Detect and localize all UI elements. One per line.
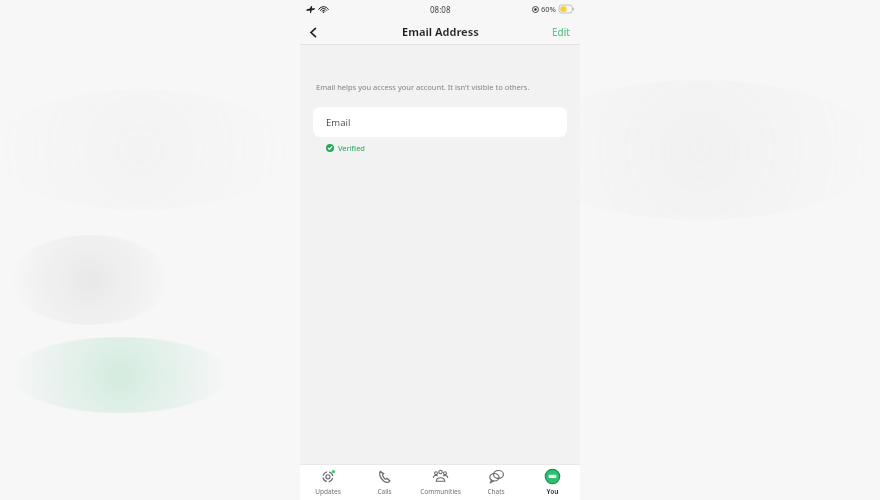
button[interactable]: You [524,465,580,500]
staticText: 60% [541,4,556,14]
staticText: You [546,487,559,496]
staticText: Verified [338,143,365,153]
staticText: Updates [315,487,341,496]
button[interactable]: Calls [356,465,412,500]
staticText: Email Address [402,24,479,39]
staticText: 08:08 [430,4,451,15]
staticText: Email helps you access your account. It … [316,82,530,92]
button[interactable]: Edit [542,18,580,45]
button[interactable]: Communities [412,465,468,500]
button[interactable]: Chats [468,465,524,500]
staticText: Calls [377,487,392,496]
button[interactable]: Email [313,107,567,137]
staticText: Email [326,116,351,129]
button[interactable]: Updates [300,465,356,500]
staticText: Edit [552,25,570,39]
button[interactable]: Back [300,19,326,45]
staticText: Chats [487,487,505,496]
staticText: Communities [420,487,461,496]
